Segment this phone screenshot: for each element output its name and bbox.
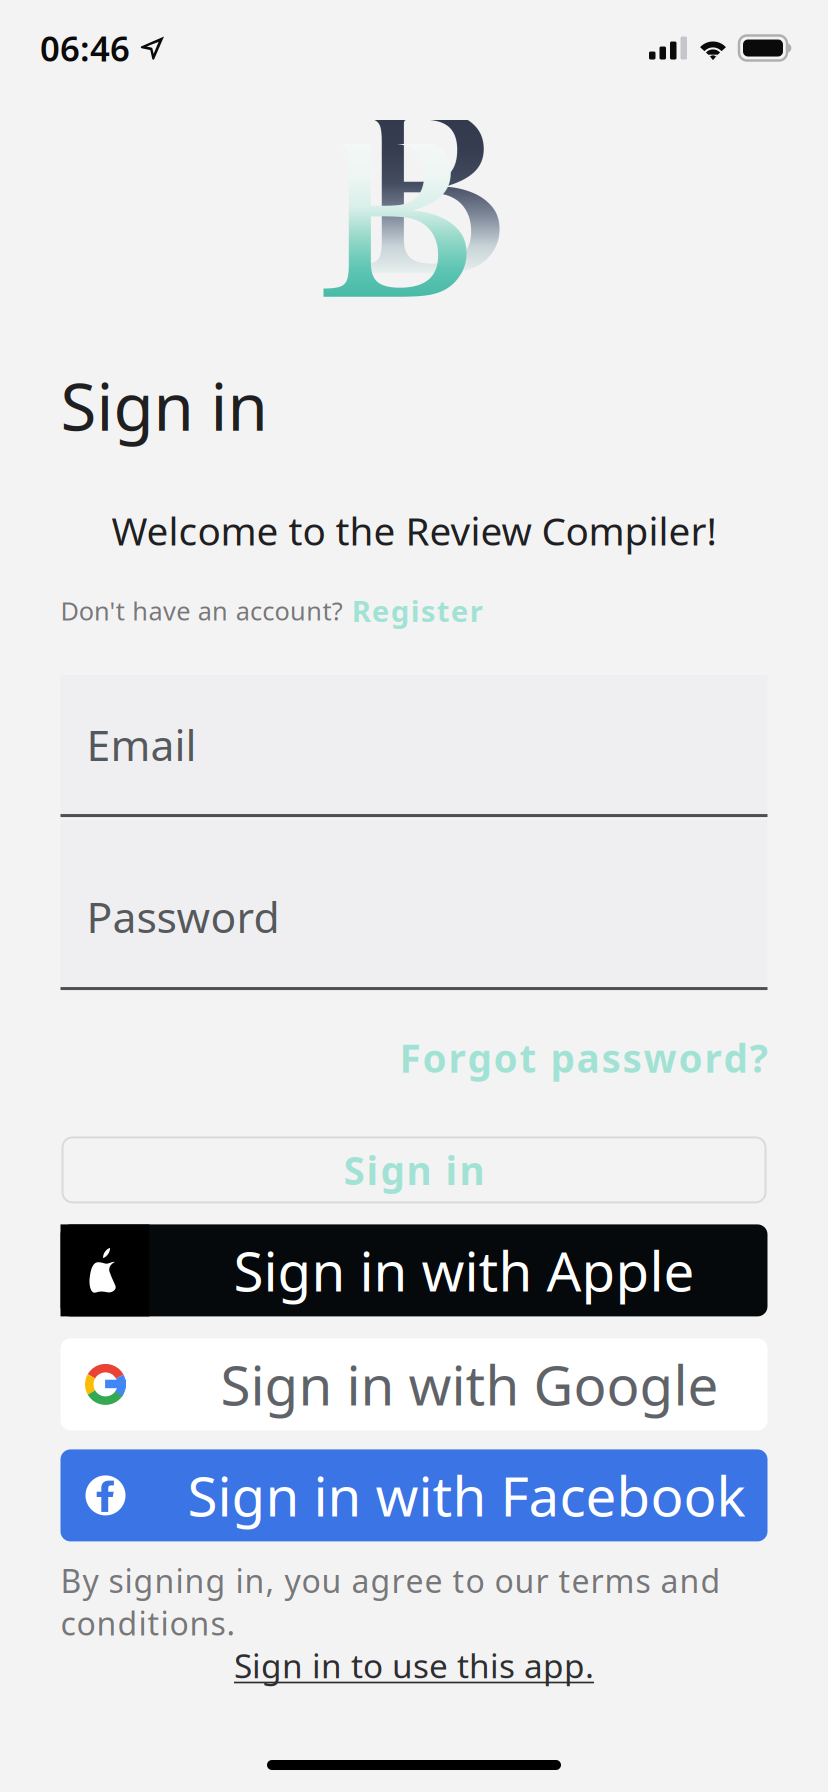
staticText: Password: [86, 888, 279, 945]
staticText: Forgot password?: [399, 1032, 767, 1083]
staticText: Sign in to use this app.: [234, 1643, 594, 1688]
staticText: By signing in, you agree to our terms an…: [60, 1559, 720, 1644]
button[interactable]: Forgot password?: [399, 1032, 767, 1083]
button[interactable]: Sign in with Apple: [60, 1224, 767, 1316]
staticText: Welcome to the Review Compiler!: [111, 505, 716, 556]
button[interactable]: Sign in: [60, 1135, 767, 1204]
staticText: Sign in: [343, 1144, 484, 1195]
button[interactable]: Password: [60, 820, 767, 990]
staticText: Email: [86, 716, 196, 773]
staticText: Sign in with Apple: [233, 1234, 694, 1307]
button[interactable]: Sign in with Facebook: [60, 1449, 767, 1541]
button[interactable]: Sign in to use this app.: [60, 1645, 767, 1685]
button[interactable]: Register: [352, 591, 483, 630]
staticText: Sign in with Facebook: [187, 1459, 745, 1532]
button[interactable]: Email: [60, 675, 767, 817]
staticText: 06:46: [40, 25, 130, 71]
button[interactable]: Sign in with Google: [60, 1338, 767, 1430]
staticText: Sign in: [60, 362, 267, 449]
staticText: Don't have an account?: [60, 594, 343, 627]
staticText: Register: [352, 591, 483, 630]
staticText: Sign in with Google: [220, 1348, 718, 1421]
